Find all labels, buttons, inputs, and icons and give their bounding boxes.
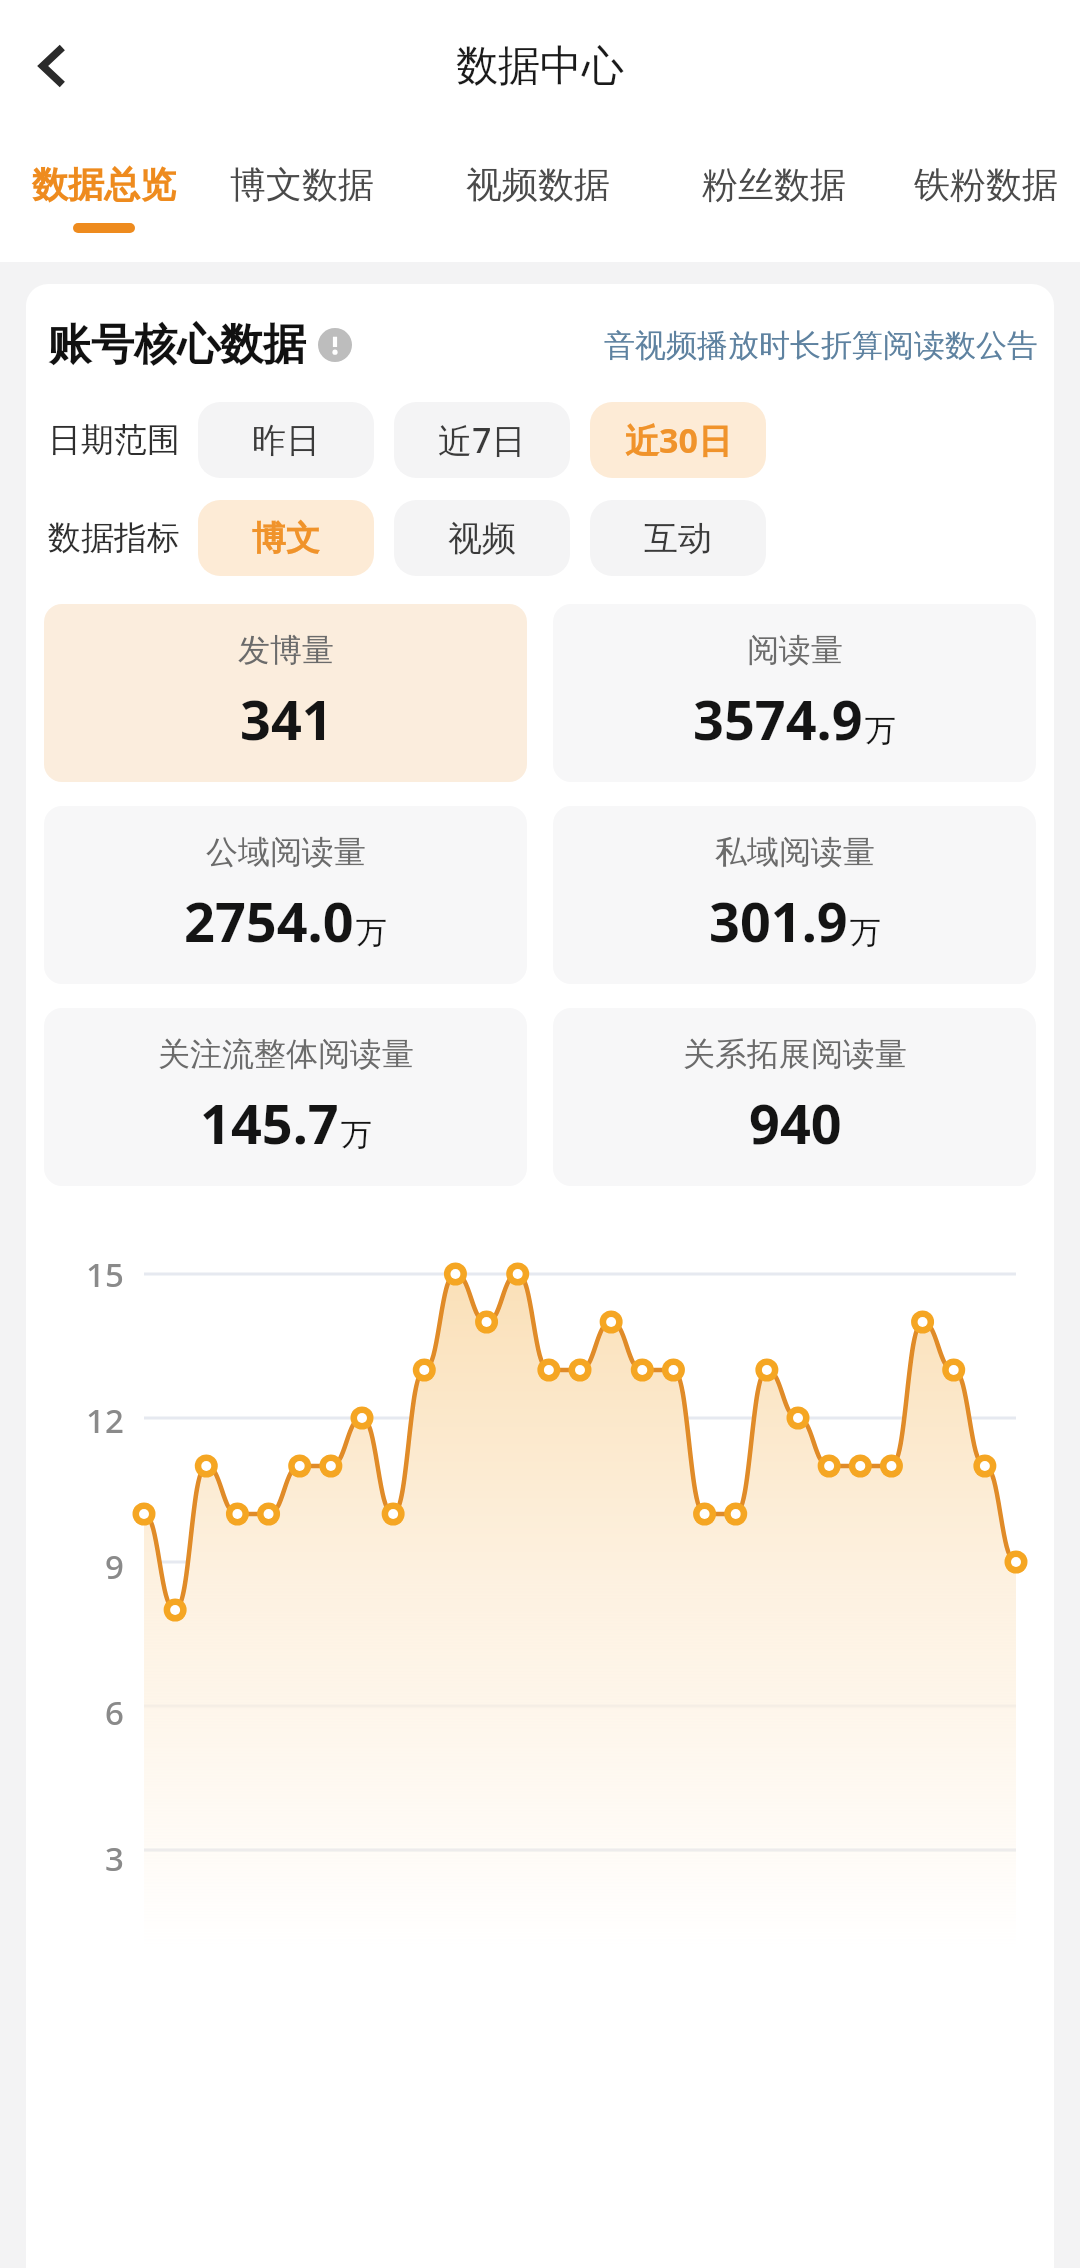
staticText: 940 [749, 1086, 842, 1160]
button[interactable]: 博文数据 [184, 132, 420, 262]
staticText: 视频 [448, 517, 516, 560]
staticText: 12 [86, 1398, 124, 1442]
staticText: 数据总览 [32, 162, 176, 207]
button[interactable]: 粉丝数据 [656, 132, 892, 262]
staticText: 公域阅读量 [206, 832, 366, 872]
staticText: 昨日 [252, 419, 320, 462]
button[interactable]: Back [16, 29, 90, 103]
button[interactable]: 私域阅读量 [553, 806, 1036, 984]
button[interactable]: 音视频播放时长折算阅读数公告 [604, 326, 1038, 365]
button[interactable]: 近7日 [394, 402, 570, 478]
staticText: 万 [865, 711, 896, 750]
staticText: 阅读量 [747, 630, 843, 670]
button[interactable]: Info [318, 328, 352, 362]
staticText: 博文数据 [230, 162, 374, 207]
button[interactable]: 公域阅读量 [44, 806, 527, 984]
staticText: 万 [341, 1115, 372, 1154]
staticText: 数据指标 [48, 517, 180, 559]
staticText: 2754.0 [184, 884, 354, 958]
staticText: 近30日 [625, 417, 732, 463]
button[interactable]: 互动 [590, 500, 766, 576]
button[interactable]: 铁粉数据 [892, 132, 1080, 262]
staticText: 万 [356, 913, 387, 952]
staticText: 9 [105, 1544, 124, 1588]
staticText: 关注流整体阅读量 [158, 1034, 414, 1074]
staticText: 3 [105, 1836, 124, 1880]
staticText: 日期范围 [48, 419, 180, 461]
staticText: 6 [105, 1690, 124, 1734]
staticText: 301.9 [709, 884, 848, 958]
staticText: 互动 [644, 517, 712, 560]
staticText: 视频数据 [466, 162, 610, 207]
staticText: 数据中心 [456, 40, 624, 93]
staticText: 私域阅读量 [715, 832, 875, 872]
button[interactable]: 发博量 [44, 604, 527, 782]
staticText: 铁粉数据 [914, 162, 1058, 207]
staticText: 博文 [252, 517, 320, 560]
button[interactable]: 视频 [394, 500, 570, 576]
staticText: 15 [86, 1252, 124, 1296]
staticText: 145.7 [200, 1086, 339, 1160]
button[interactable]: 关系拓展阅读量 [553, 1008, 1036, 1186]
staticText: 近7日 [438, 417, 526, 463]
staticText: 账号核心数据 [48, 318, 306, 372]
staticText: 发博量 [238, 630, 334, 670]
button[interactable]: 视频数据 [420, 132, 656, 262]
button[interactable]: 阅读量 [553, 604, 1036, 782]
button[interactable]: 数据总览 [24, 132, 184, 262]
staticText: 音视频播放时长折算阅读数公告 [604, 326, 1038, 365]
staticText: 关系拓展阅读量 [683, 1034, 907, 1074]
staticText: 3574.9 [693, 682, 863, 756]
staticText: 粉丝数据 [702, 162, 846, 207]
button[interactable]: 近30日 [590, 402, 766, 478]
button[interactable]: 昨日 [198, 402, 374, 478]
staticText: 341 [240, 682, 333, 756]
button[interactable]: 关注流整体阅读量 [44, 1008, 527, 1186]
staticText: 万 [850, 913, 881, 952]
button[interactable]: 博文 [198, 500, 374, 576]
